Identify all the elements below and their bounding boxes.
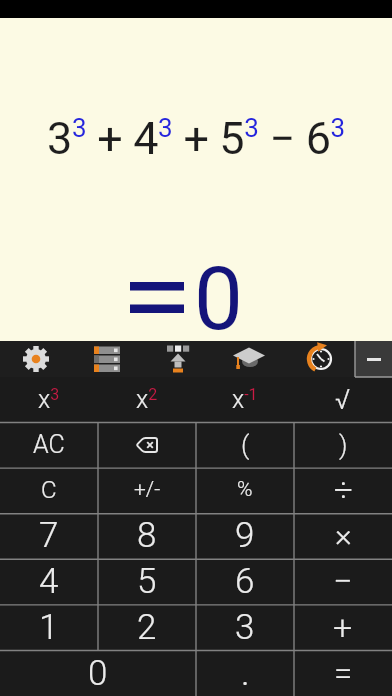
staticText: 5 <box>137 561 157 602</box>
button[interactable]: + <box>294 604 392 650</box>
staticText: % <box>237 477 253 502</box>
staticText: = <box>334 654 353 693</box>
staticText: x3 <box>38 385 60 415</box>
staticText: × <box>335 516 352 554</box>
staticText: 33 + 43 + 53 − 63 <box>47 112 346 165</box>
button[interactable]: 7 <box>0 512 98 558</box>
staticText: 7 <box>39 515 59 556</box>
button[interactable]: 8 <box>98 512 196 558</box>
staticText: √ <box>335 383 351 416</box>
button[interactable] <box>284 341 355 377</box>
button[interactable]: x2 <box>98 377 196 422</box>
staticText: ) <box>339 430 348 460</box>
button[interactable]: 6 <box>196 558 294 604</box>
button[interactable]: AC <box>0 422 98 467</box>
staticText: +/- <box>134 477 161 502</box>
button[interactable]: +/- <box>98 467 196 512</box>
button[interactable]: 1 <box>0 604 98 650</box>
button[interactable]: % <box>196 467 294 512</box>
staticText: − <box>333 561 353 601</box>
staticText: ( <box>241 430 250 460</box>
button[interactable]: 5 <box>98 558 196 604</box>
button[interactable]: − <box>294 558 392 604</box>
button[interactable]: x-1 <box>196 377 294 422</box>
staticText: x-1 <box>232 385 258 415</box>
button[interactable]: 3 <box>196 604 294 650</box>
button[interactable]: × <box>294 512 392 558</box>
button[interactable] <box>355 341 392 377</box>
staticText: 0 <box>88 653 108 694</box>
button[interactable]: . <box>196 650 294 696</box>
staticText: C <box>41 476 57 504</box>
button[interactable]: ( <box>196 422 294 467</box>
button[interactable]: x3 <box>0 377 98 422</box>
staticText: AC <box>33 430 65 459</box>
button[interactable] <box>71 341 142 377</box>
staticText: 1 <box>39 607 59 648</box>
staticText: 9 <box>235 515 255 556</box>
button[interactable]: = <box>294 650 392 696</box>
button[interactable]: 9 <box>196 512 294 558</box>
staticText: 3 <box>235 607 255 648</box>
staticText: 2 <box>137 607 157 648</box>
staticText: . <box>241 652 250 694</box>
button[interactable] <box>213 341 284 377</box>
button[interactable] <box>0 341 71 377</box>
staticText: 8 <box>137 515 157 556</box>
staticText: + <box>333 607 353 647</box>
button[interactable]: ÷ <box>294 467 392 512</box>
staticText: 0 <box>194 248 243 350</box>
button[interactable]: C <box>0 467 98 512</box>
staticText: x2 <box>136 385 158 415</box>
staticText: 4 <box>39 561 59 602</box>
button[interactable]: ) <box>294 422 392 467</box>
button[interactable] <box>142 341 213 377</box>
staticText: ÷ <box>334 470 353 509</box>
button[interactable] <box>98 422 196 467</box>
button[interactable]: 2 <box>98 604 196 650</box>
button[interactable]: 4 <box>0 558 98 604</box>
button[interactable]: √ <box>294 377 392 422</box>
button[interactable]: 0 <box>0 650 196 696</box>
staticText: 6 <box>235 561 255 602</box>
